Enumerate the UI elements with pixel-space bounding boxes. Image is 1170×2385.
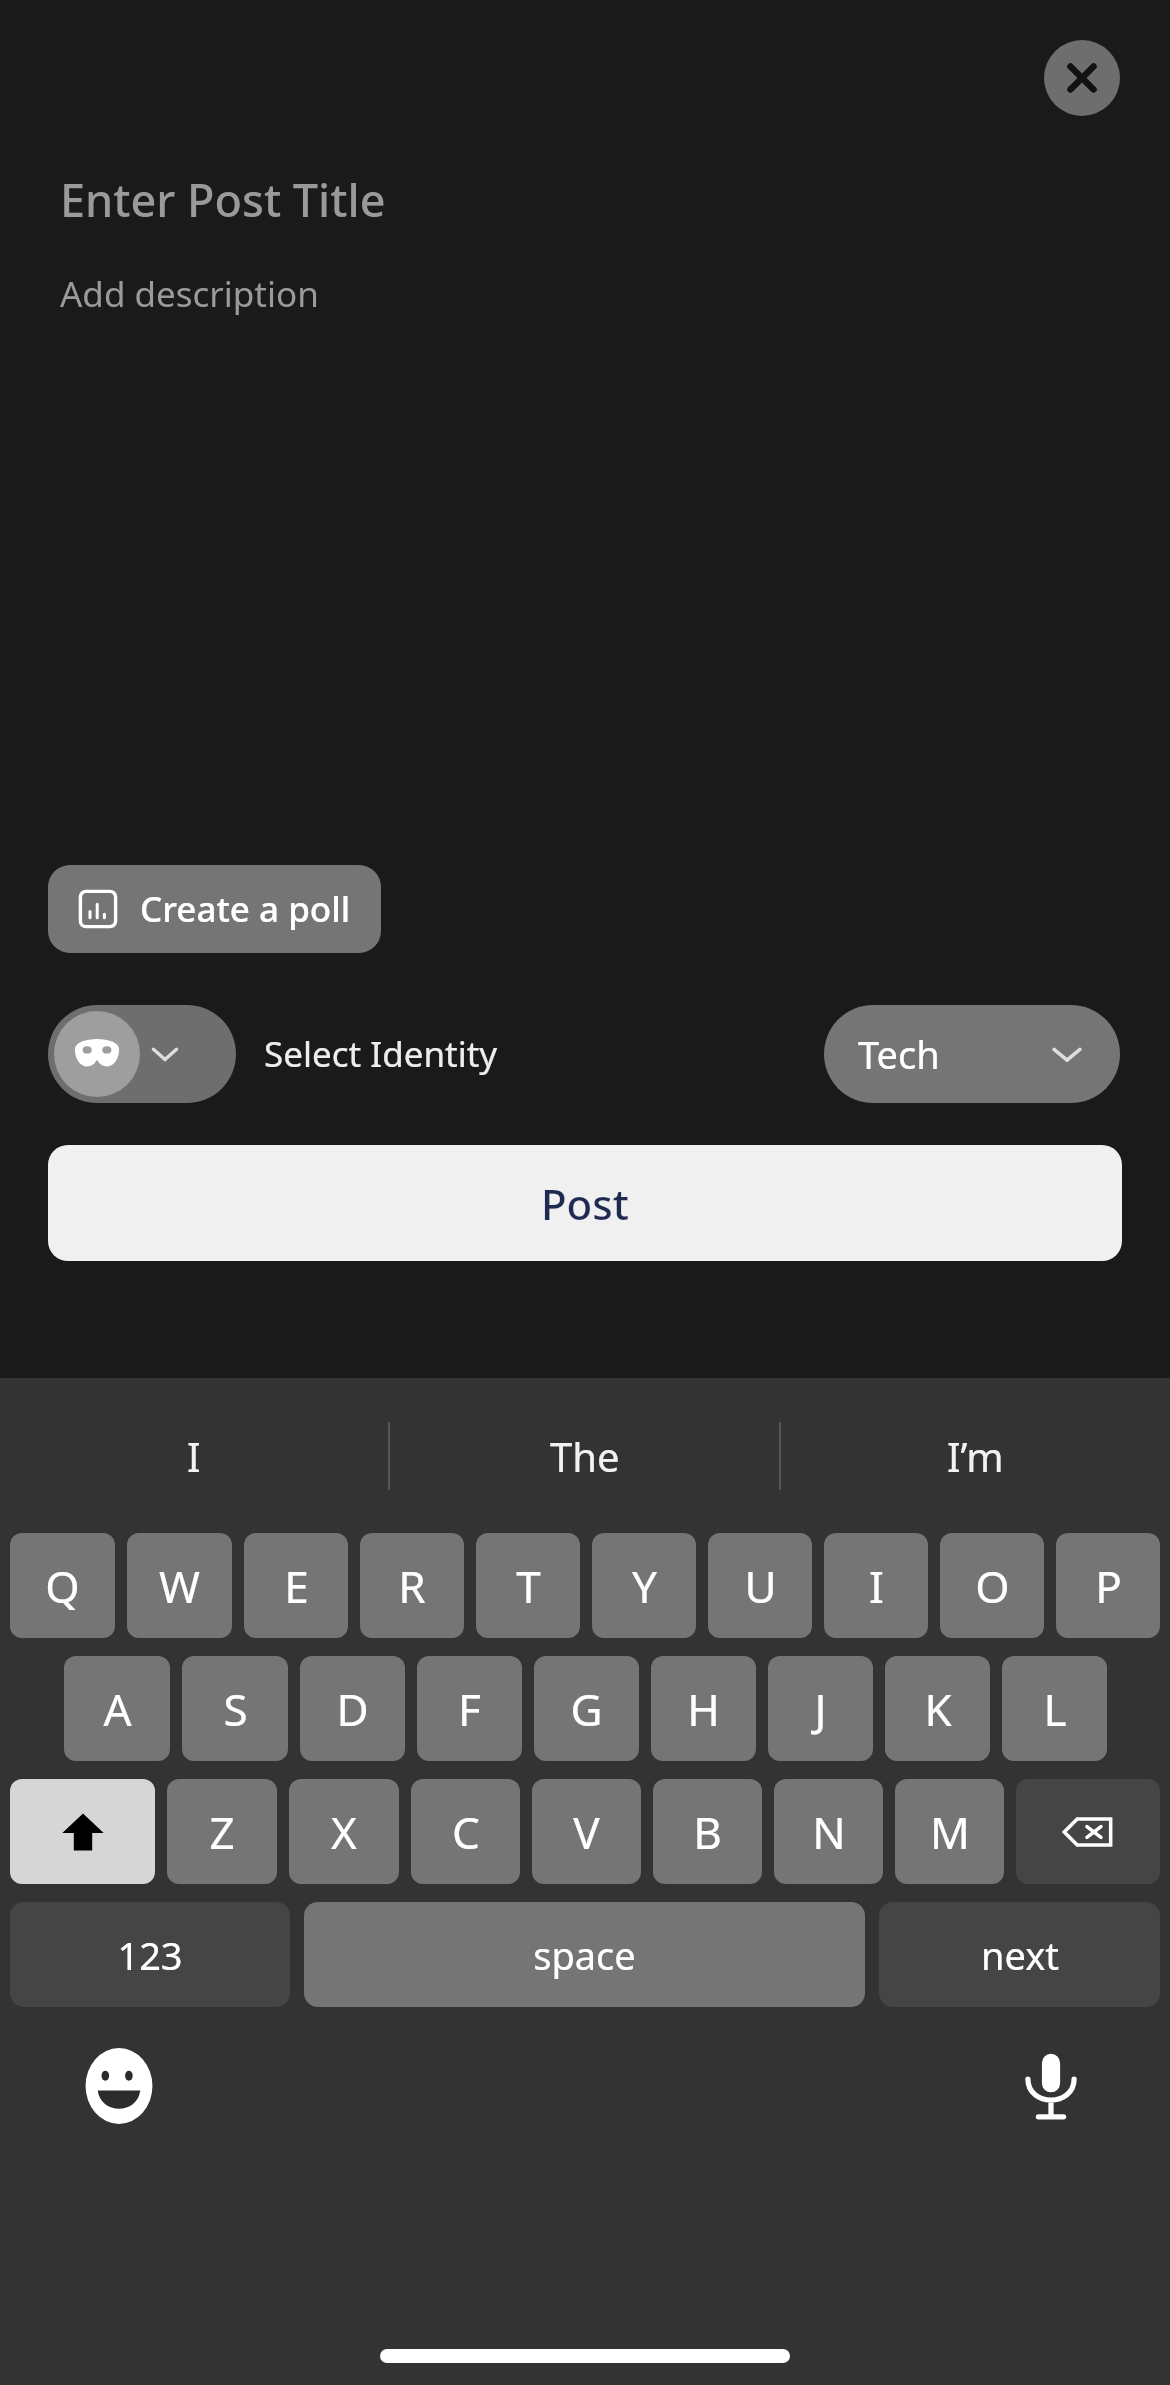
button[interactable]: Post bbox=[48, 1145, 1122, 1261]
button[interactable]: R bbox=[360, 1533, 464, 1638]
button[interactable]: Backspace bbox=[1016, 1779, 1160, 1884]
staticText: A bbox=[103, 1679, 132, 1739]
staticText: M bbox=[930, 1802, 970, 1862]
staticText: K bbox=[924, 1679, 952, 1739]
button[interactable]: M bbox=[895, 1779, 1004, 1884]
button[interactable]: Emoji bbox=[78, 2045, 160, 2127]
button[interactable]: G bbox=[534, 1656, 639, 1761]
button[interactable]: U bbox=[708, 1533, 812, 1638]
button[interactable]: W bbox=[127, 1533, 232, 1638]
staticText: S bbox=[223, 1679, 248, 1739]
button[interactable]: I bbox=[824, 1533, 928, 1638]
button[interactable]: T bbox=[476, 1533, 580, 1638]
button[interactable]: D bbox=[300, 1656, 405, 1761]
staticText: next bbox=[981, 1929, 1059, 1981]
staticText: Q bbox=[45, 1556, 80, 1616]
staticText: 123 bbox=[117, 1929, 183, 1981]
button[interactable]: F bbox=[417, 1656, 522, 1761]
staticText: C bbox=[452, 1802, 480, 1862]
staticText: Create a poll bbox=[140, 885, 351, 933]
button[interactable]: 123 bbox=[10, 1902, 290, 2007]
button[interactable]: C bbox=[411, 1779, 520, 1884]
staticText: L bbox=[1043, 1679, 1067, 1739]
button[interactable]: Shift bbox=[10, 1779, 155, 1884]
staticText: O bbox=[975, 1556, 1010, 1616]
staticText: E bbox=[284, 1556, 309, 1616]
button[interactable]: I bbox=[0, 1378, 388, 1533]
staticText: X bbox=[331, 1802, 357, 1862]
button[interactable]: P bbox=[1056, 1533, 1160, 1638]
staticText: I bbox=[187, 1429, 201, 1483]
staticText: U bbox=[744, 1556, 777, 1616]
staticText: N bbox=[812, 1802, 846, 1862]
button[interactable]: K bbox=[885, 1656, 990, 1761]
staticText: H bbox=[687, 1679, 720, 1739]
button[interactable]: Q bbox=[10, 1533, 115, 1638]
staticText: B bbox=[693, 1802, 722, 1862]
button[interactable]: X bbox=[289, 1779, 399, 1884]
staticText: P bbox=[1095, 1556, 1122, 1616]
button[interactable]: I’m bbox=[781, 1378, 1170, 1533]
staticText: Y bbox=[632, 1556, 657, 1616]
button[interactable]: A bbox=[64, 1656, 170, 1761]
button[interactable]: Tech bbox=[824, 1005, 1120, 1103]
button[interactable]: B bbox=[653, 1779, 762, 1884]
staticText: Z bbox=[209, 1802, 235, 1862]
button[interactable]: The bbox=[390, 1378, 779, 1533]
staticText: D bbox=[336, 1679, 369, 1739]
staticText: The bbox=[550, 1429, 620, 1483]
button[interactable]: Voice input bbox=[1010, 2045, 1092, 2127]
staticText: J bbox=[814, 1679, 827, 1739]
button[interactable]: H bbox=[651, 1656, 756, 1761]
staticText: space bbox=[533, 1929, 636, 1981]
button[interactable]: J bbox=[768, 1656, 873, 1761]
staticText: Select Identity bbox=[264, 1030, 498, 1078]
staticText: Post bbox=[541, 1175, 629, 1232]
staticText: W bbox=[159, 1556, 200, 1616]
button[interactable]: O bbox=[940, 1533, 1044, 1638]
staticText: R bbox=[398, 1556, 426, 1616]
button[interactable]: Y bbox=[592, 1533, 696, 1638]
button[interactable]: L bbox=[1002, 1656, 1107, 1761]
staticText: T bbox=[516, 1556, 541, 1616]
staticText: I’m bbox=[947, 1429, 1004, 1483]
staticText: V bbox=[573, 1802, 600, 1862]
button[interactable]: Close bbox=[1044, 40, 1120, 116]
button[interactable]: V bbox=[532, 1779, 641, 1884]
staticText: Enter Post Title bbox=[60, 169, 386, 230]
button[interactable]: Z bbox=[167, 1779, 277, 1884]
button[interactable]: N bbox=[774, 1779, 883, 1884]
button[interactable]: next bbox=[879, 1902, 1160, 2007]
button[interactable]: E bbox=[244, 1533, 348, 1638]
staticText: Add description bbox=[60, 270, 319, 318]
button[interactable]: Create a poll bbox=[48, 865, 381, 953]
button[interactable]: S bbox=[182, 1656, 288, 1761]
staticText: Tech bbox=[858, 1028, 940, 1080]
button[interactable]: space bbox=[304, 1902, 865, 2007]
staticText: G bbox=[570, 1679, 603, 1739]
staticText: F bbox=[458, 1679, 481, 1739]
staticText: I bbox=[869, 1556, 884, 1616]
button[interactable]: Select identity avatar bbox=[48, 1005, 236, 1103]
